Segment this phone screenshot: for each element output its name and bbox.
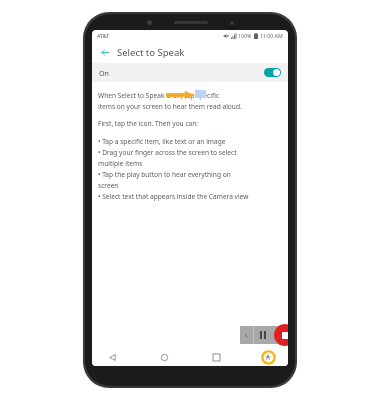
staticText: 100% (238, 32, 252, 39)
staticText: multiple items (98, 159, 143, 168)
button[interactable]: Pause (254, 326, 271, 344)
staticText: AT&T (97, 32, 110, 39)
staticText: • Tap a specific item, like text or an i… (98, 137, 226, 146)
button[interactable]: Back (104, 349, 120, 365)
button[interactable]: Previous (240, 326, 253, 344)
staticText: On (99, 68, 110, 78)
staticText: First, tap the icon. Then you can: (98, 119, 199, 128)
button[interactable]: Recent apps (208, 349, 224, 365)
button[interactable]: Home (156, 349, 172, 365)
staticText: items on your screen to hear them read a… (98, 102, 242, 111)
button[interactable]: Stop (274, 324, 288, 346)
button[interactable]: On (92, 63, 288, 82)
button[interactable]: Accessibility (260, 349, 276, 365)
staticText: • Select text that appears inside the Ca… (98, 192, 249, 201)
staticText: • Tap the play button to hear everything… (98, 170, 231, 179)
button[interactable]: Back (98, 45, 112, 59)
staticText: When Select to Speak is on, tap specific (98, 91, 220, 100)
staticText: • Drag your finger across the screen to … (98, 148, 237, 157)
staticText: Select to Speak (117, 46, 185, 59)
staticText: 11:00 AM (260, 32, 283, 39)
staticText: screen (98, 181, 119, 190)
